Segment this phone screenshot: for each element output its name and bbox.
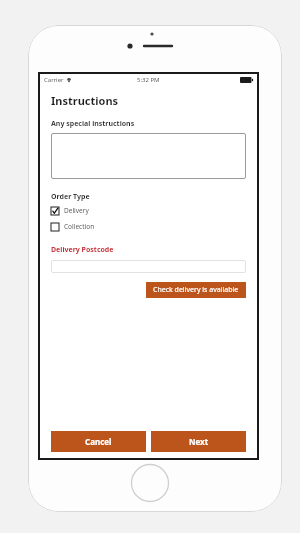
button[interactable]: Delivery xyxy=(51,205,89,216)
staticText: Next xyxy=(189,436,209,447)
staticText: Check delivery is available xyxy=(153,285,239,295)
staticText: Instructions xyxy=(51,93,119,108)
button[interactable] xyxy=(51,133,246,179)
button[interactable]: Check delivery is available xyxy=(146,282,246,298)
staticText: Order Type xyxy=(51,192,90,202)
button[interactable]: Cancel xyxy=(51,431,146,452)
button[interactable] xyxy=(51,260,246,273)
staticText: Collection xyxy=(64,222,95,231)
button[interactable]: Collection xyxy=(51,221,95,232)
staticText: Cancel xyxy=(85,436,112,447)
staticText: Any special instructions xyxy=(51,119,135,129)
staticText: Delivery Postcode xyxy=(51,245,114,255)
staticText: Delivery xyxy=(64,206,89,215)
staticText: Carrier xyxy=(44,76,64,84)
staticText: 5:32 PM xyxy=(137,76,160,84)
button[interactable]: Next xyxy=(151,431,246,452)
